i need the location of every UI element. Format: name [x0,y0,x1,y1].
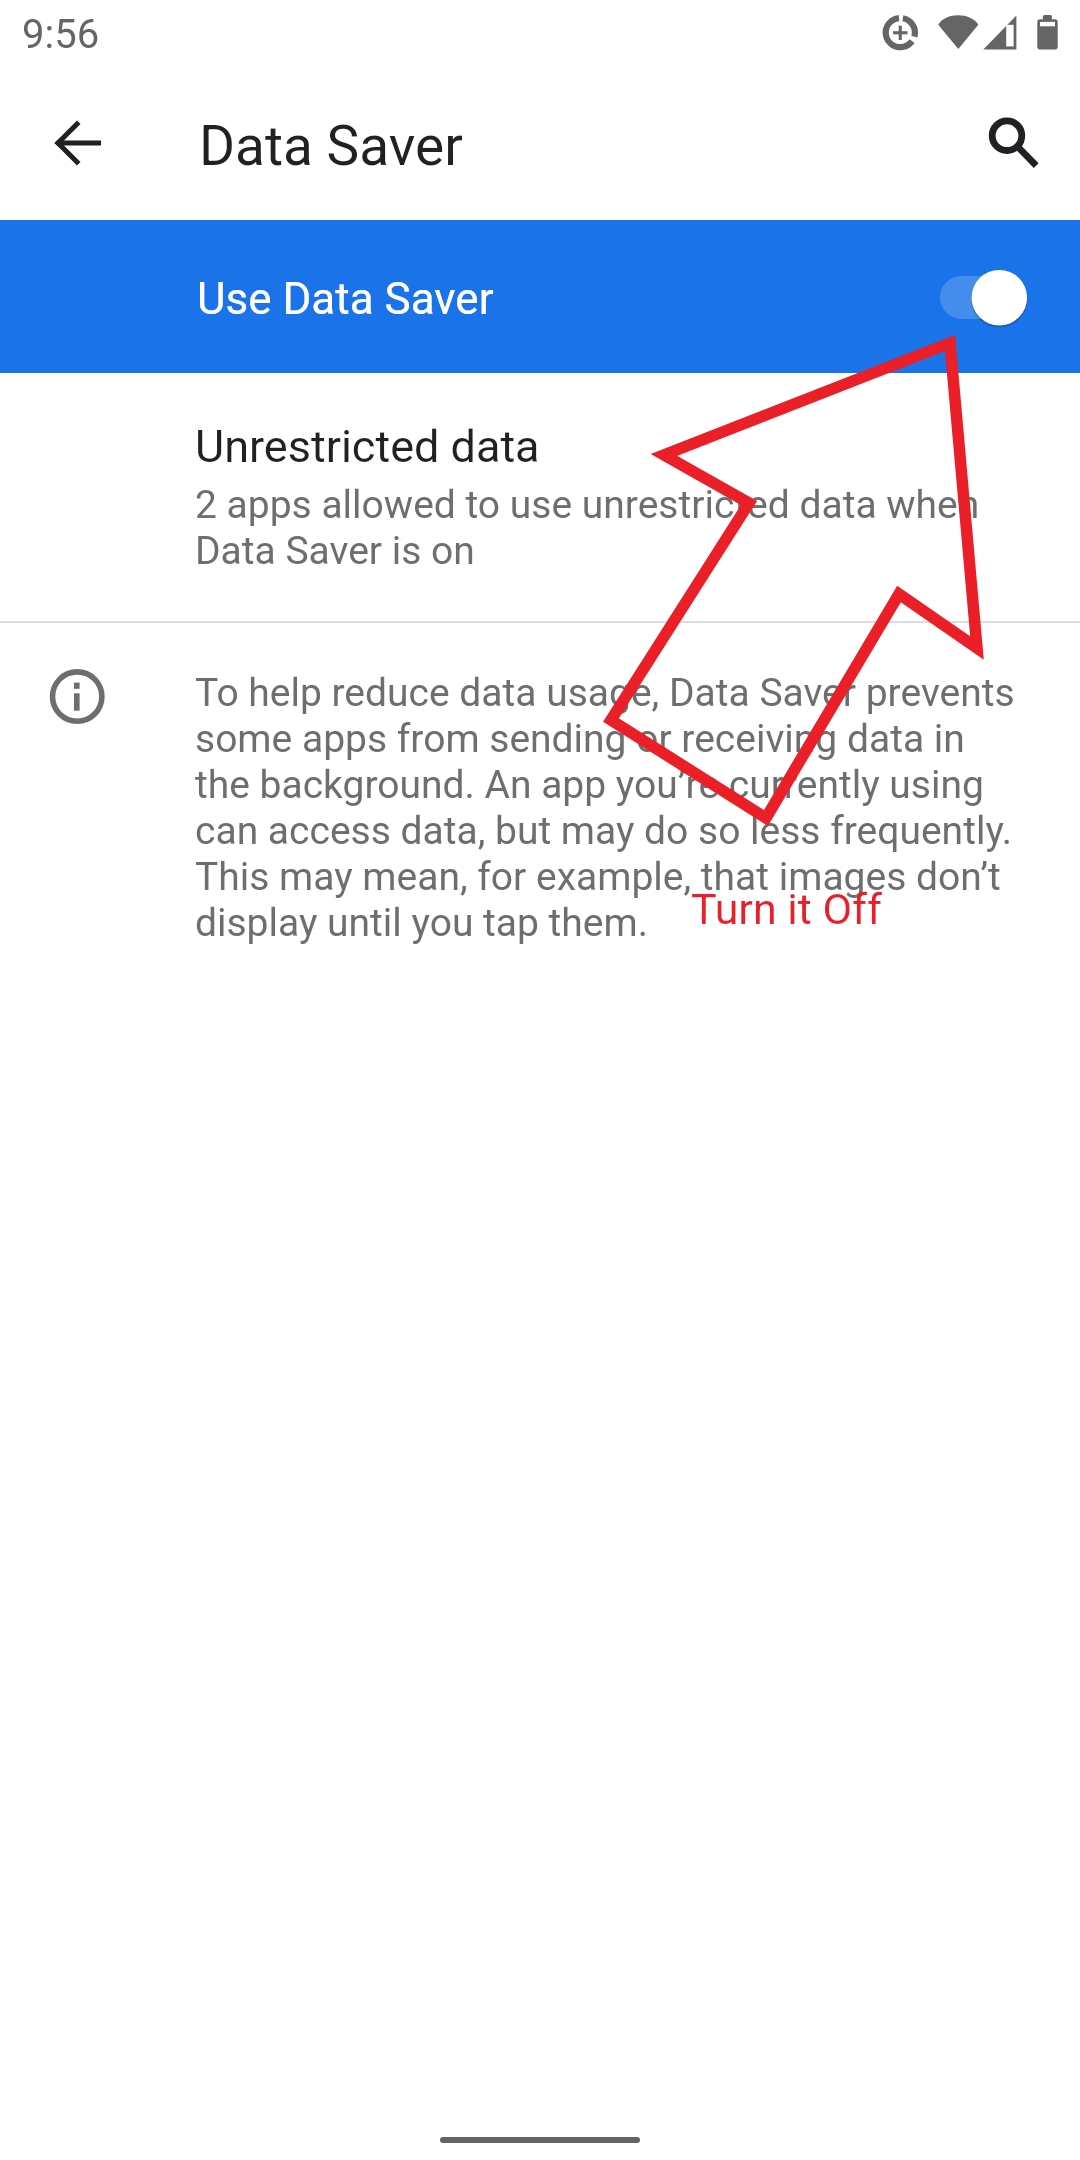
button[interactable]: Use Data Saver [0,220,1080,373]
staticText: Unrestricted data [195,420,540,473]
button[interactable]: Search [966,95,1062,191]
staticText: Use Data Saver [197,273,494,325]
staticText: Turn it Off [691,884,883,934]
staticText: 2 apps allowed to use unrestricted data … [195,482,980,574]
button[interactable]: Unrestricted data [0,373,1080,623]
button[interactable]: Back [31,95,127,191]
staticText: To help reduce data usage, Data Saver pr… [195,670,1015,946]
staticText: Data Saver [199,114,463,178]
staticText: 9:56 [22,11,100,58]
